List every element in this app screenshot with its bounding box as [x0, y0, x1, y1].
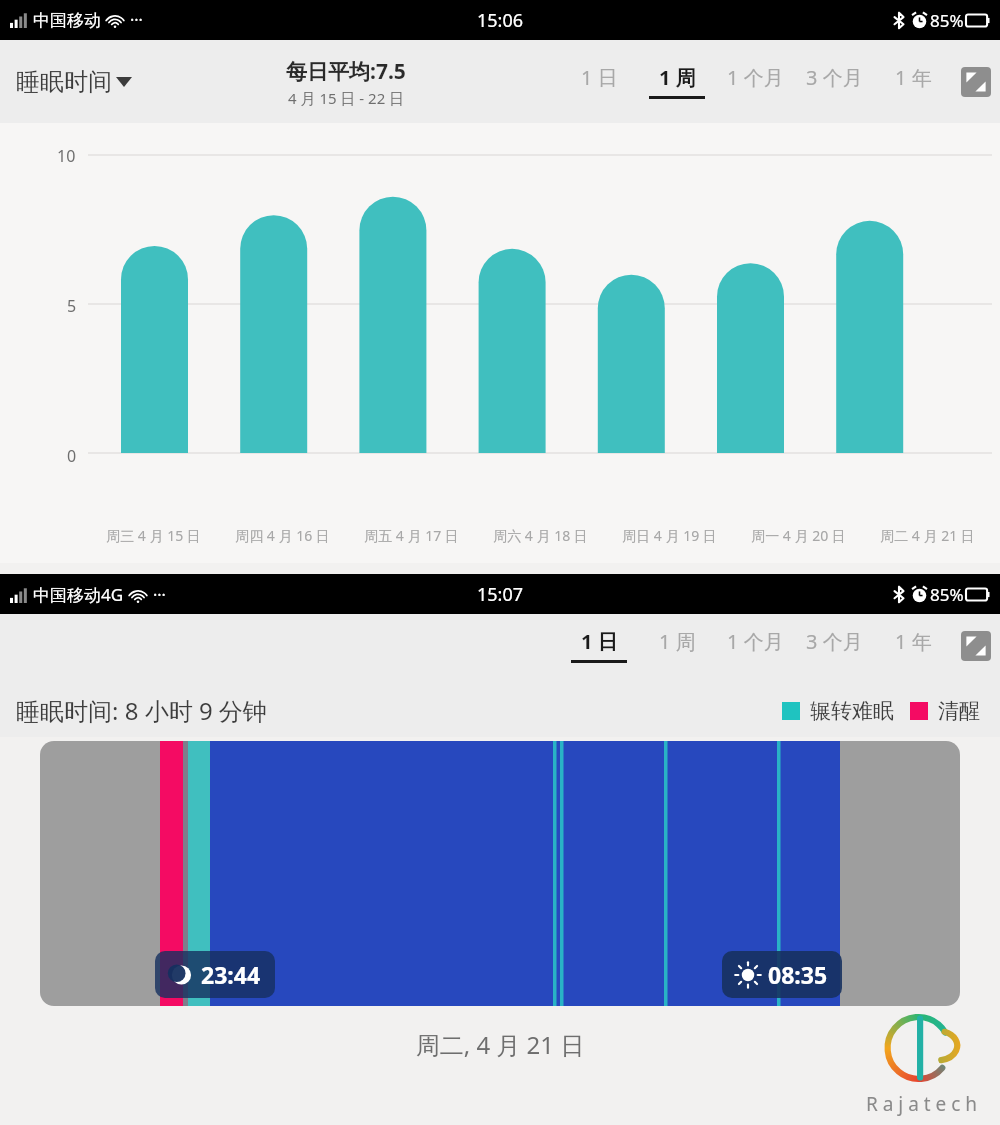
button[interactable]: 1 日 [560, 60, 638, 103]
staticText: 睡眠时间 [16, 67, 112, 97]
button[interactable]: Expand chart [960, 630, 992, 662]
staticText: 1 日 [581, 64, 618, 91]
button[interactable]: 1 个月 [716, 624, 795, 667]
staticText: 1 个月 [727, 628, 784, 655]
button[interactable]: 1 周 [638, 624, 716, 667]
staticText: 周日 4 月 19 日 [622, 526, 717, 545]
staticText: 周二 4 月 21 日 [880, 526, 975, 545]
staticText: 周一 4 月 20 日 [751, 526, 846, 545]
staticText: 1 日 [581, 628, 618, 655]
staticText: 5 [67, 295, 77, 317]
staticText: 85% [930, 9, 964, 32]
button[interactable]: Wake up [736, 959, 828, 990]
staticText: 1 年 [895, 628, 932, 655]
staticText: 15:07 [477, 582, 524, 607]
staticText: 10 [57, 145, 76, 167]
staticText: 1 周 [659, 628, 696, 655]
staticText: 清醒 [938, 698, 980, 724]
staticText: 周四 4 月 16 日 [235, 526, 330, 545]
other: Wake up [736, 963, 760, 987]
staticText: 周二, 4 月 21 日 [0, 1028, 1000, 1061]
staticText: 睡眠时间: 8 小时 9 分钟 [16, 694, 267, 727]
button[interactable]: 1 日 [560, 624, 638, 667]
staticText: 周三 4 月 15 日 [106, 526, 201, 545]
button[interactable]: Sleep start [40, 741, 960, 1006]
staticText: 0 [67, 445, 77, 467]
button[interactable]: 3 个月 [795, 624, 874, 667]
staticText: 中国移动 [33, 10, 101, 31]
other: Sleep start [169, 963, 193, 987]
button[interactable]: 1 年 [874, 60, 952, 103]
button[interactable]: 睡眠时间 [16, 67, 132, 97]
staticText: 08:35 [768, 959, 828, 990]
button[interactable]: 1 个月 [716, 60, 795, 103]
staticText: 中国移动4G [33, 583, 124, 606]
button[interactable]: 1 周 [638, 60, 716, 103]
staticText: 1 年 [895, 64, 932, 91]
staticText: 周五 4 月 17 日 [364, 526, 459, 545]
staticText: 85% [930, 583, 964, 606]
staticText: 23:44 [201, 959, 261, 990]
staticText: 15:06 [477, 8, 524, 33]
button[interactable]: 3 个月 [795, 60, 874, 103]
staticText: 4 月 15 日 - 22 日 [288, 88, 405, 108]
staticText: 每日平均:7.5 [286, 57, 406, 86]
staticText: R a j a t e c h [866, 1091, 978, 1117]
button[interactable]: 1 年 [874, 624, 952, 667]
staticText: ··· [130, 9, 143, 31]
staticText: 3 个月 [806, 628, 863, 655]
staticText: 1 个月 [727, 64, 784, 91]
staticText: 3 个月 [806, 64, 863, 91]
staticText: 周六 4 月 18 日 [493, 526, 588, 545]
staticText: 辗转难眠 [810, 698, 894, 724]
button[interactable]: Expand chart [960, 66, 992, 98]
button[interactable]: Sleep start [169, 959, 261, 990]
staticText: 1 周 [659, 64, 696, 91]
staticText: ··· [153, 584, 166, 606]
